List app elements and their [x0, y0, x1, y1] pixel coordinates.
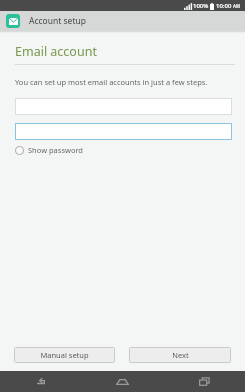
staticText: Email account	[15, 43, 97, 60]
button[interactable]: Show password	[13, 143, 87, 157]
staticText: 100%	[193, 2, 209, 10]
button[interactable]: Manual setup	[14, 347, 115, 363]
staticText: Next	[172, 350, 189, 360]
button[interactable]: Next	[129, 347, 231, 363]
staticText: You can set up most email accounts in ju…	[15, 77, 208, 87]
button[interactable]	[15, 123, 232, 140]
staticText: Show password	[28, 145, 83, 155]
staticText: Manual setup	[40, 350, 89, 360]
button[interactable]	[15, 98, 232, 115]
button[interactable]: Home	[81, 371, 163, 392]
button[interactable]: Recent apps	[163, 371, 245, 392]
button[interactable]: Back	[0, 371, 81, 392]
staticText: AM	[233, 3, 241, 9]
staticText: 10:00	[216, 2, 232, 10]
staticText: Account setup	[29, 15, 86, 27]
